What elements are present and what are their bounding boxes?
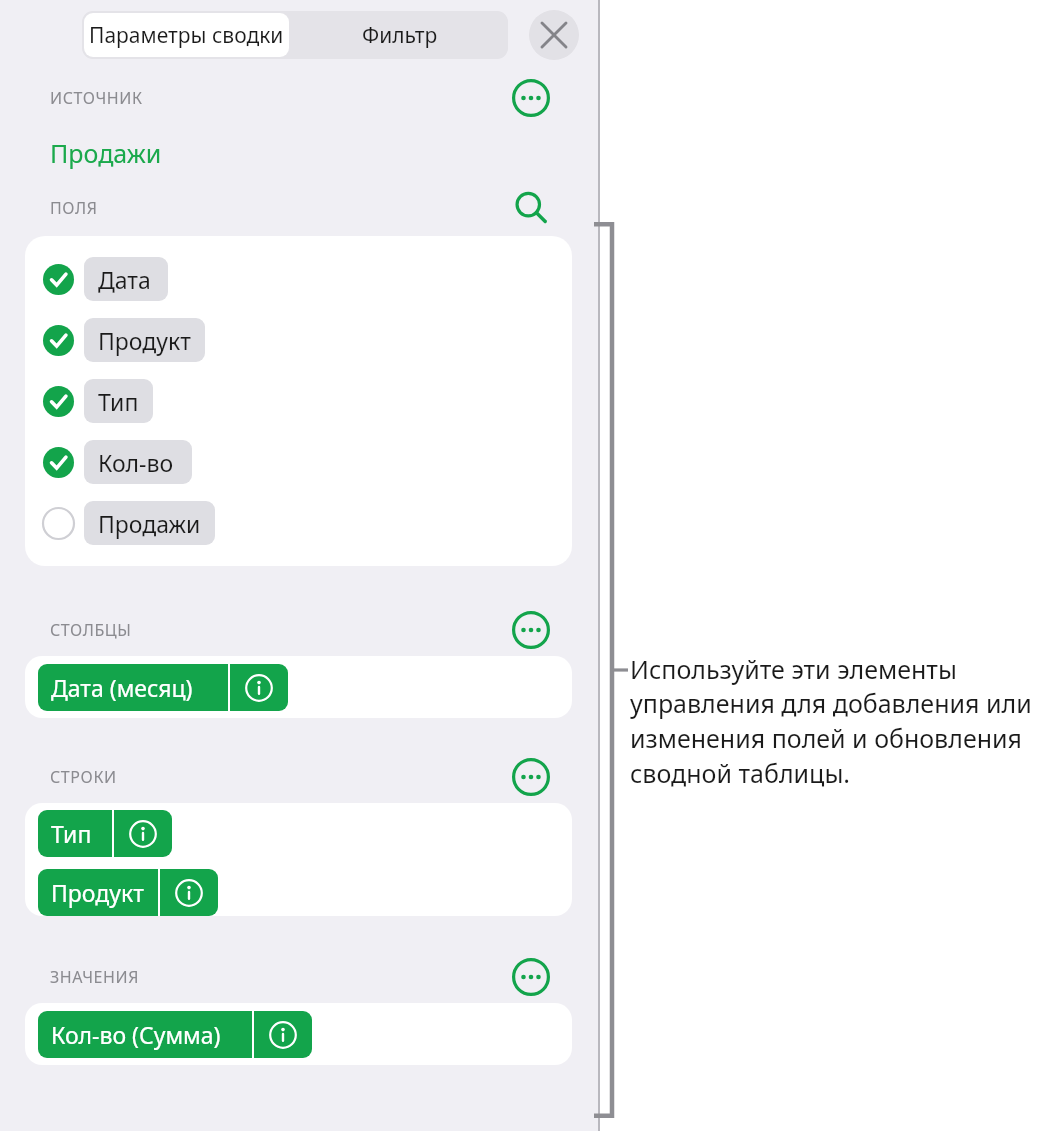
button[interactable]: Продукт: [38, 869, 218, 916]
staticText: ИСТОЧНИК: [50, 87, 143, 109]
staticText: Используйте эти элементы управления для …: [630, 652, 1048, 791]
staticText: Дата (месяц): [51, 672, 193, 703]
other: Info: [160, 869, 218, 916]
other: Info: [114, 810, 172, 857]
staticText: Тип: [51, 818, 92, 849]
staticText: СТРОКИ: [50, 766, 117, 788]
button[interactable]: Продукт: [25, 309, 572, 370]
button[interactable]: Продажи: [25, 492, 572, 553]
staticText: Продукт: [51, 877, 144, 908]
button[interactable]: More options: [509, 755, 553, 799]
other: Info: [254, 1011, 312, 1058]
button[interactable]: More options: [509, 955, 553, 999]
button[interactable]: Тип: [38, 810, 172, 857]
staticText: Тип: [98, 386, 139, 417]
staticText: Фильтр: [362, 21, 438, 50]
button[interactable]: Тип: [25, 370, 572, 431]
button[interactable]: Дата (месяц): [38, 664, 288, 711]
button[interactable]: Close: [529, 10, 579, 60]
button[interactable]: More options: [509, 608, 553, 652]
staticText: Продажи: [50, 136, 162, 170]
staticText: Параметры сводки: [89, 21, 284, 50]
button[interactable]: Дата: [25, 248, 572, 309]
staticText: Кол-во: [98, 447, 174, 478]
button[interactable]: More options: [509, 76, 553, 120]
staticText: СТОЛБЦЫ: [50, 619, 132, 641]
other: Info: [230, 664, 288, 711]
staticText: Продукт: [98, 325, 191, 356]
staticText: ПОЛЯ: [50, 197, 98, 219]
button[interactable]: Параметры сводки: [84, 13, 289, 57]
button[interactable]: Кол-во: [25, 431, 572, 492]
button[interactable]: Search: [509, 186, 553, 230]
staticText: ЗНАЧЕНИЯ: [50, 966, 140, 988]
staticText: Дата: [98, 264, 151, 295]
button[interactable]: Кол-во (Сумма): [38, 1011, 312, 1058]
staticText: Продажи: [98, 508, 201, 539]
staticText: Кол-во (Сумма): [51, 1019, 221, 1050]
button[interactable]: Фильтр: [291, 11, 508, 59]
button[interactable]: Продажи: [50, 126, 162, 180]
